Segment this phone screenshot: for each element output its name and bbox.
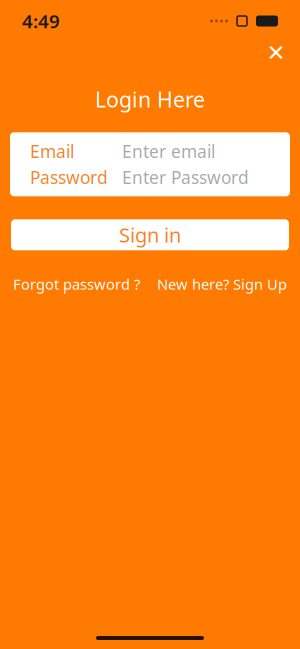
staticText: Enter email: [122, 140, 215, 163]
button[interactable]: Sign in: [11, 219, 289, 250]
staticText: Enter Password: [122, 166, 249, 189]
staticText: New here? Sign Up: [157, 274, 287, 294]
staticText: Email: [30, 140, 74, 163]
button[interactable]: New here? Sign Up: [157, 274, 287, 294]
button[interactable]: Close: [261, 38, 291, 68]
staticText: Password: [30, 166, 108, 189]
staticText: Sign in: [119, 222, 181, 248]
staticText: Login Here: [95, 85, 205, 113]
staticText: Forgot password ?: [13, 274, 140, 294]
button[interactable]: Forgot password ?: [13, 274, 140, 294]
staticText: ✕: [266, 40, 285, 66]
staticText: 4:49: [22, 9, 60, 33]
